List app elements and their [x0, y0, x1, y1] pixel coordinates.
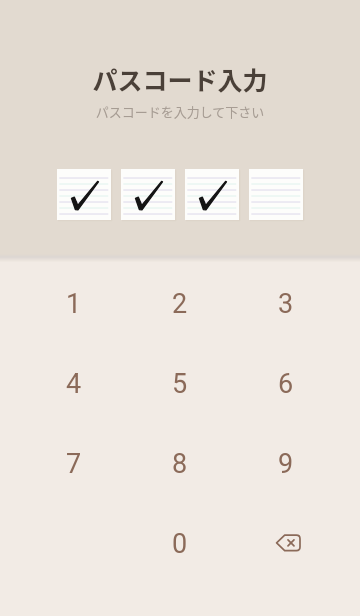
staticText: パスコードを入力して下さい — [0, 102, 360, 121]
button[interactable]: Passcode digit 2 entered — [121, 169, 175, 220]
button[interactable]: Passcode digit 4 empty — [249, 169, 303, 220]
button[interactable]: 5 — [127, 341, 233, 421]
button[interactable]: 7 — [21, 421, 127, 501]
button[interactable]: Passcode digit 3 entered — [185, 169, 239, 220]
button[interactable]: 3 — [233, 261, 339, 341]
staticText: 9 — [278, 448, 294, 480]
button[interactable]: Passcode digit 1 entered — [57, 169, 111, 220]
button[interactable]: 2 — [127, 261, 233, 341]
staticText: パスコード入力 — [0, 61, 360, 97]
button[interactable]: Delete — [233, 501, 339, 581]
staticText: 3 — [278, 288, 294, 320]
button[interactable]: 8 — [127, 421, 233, 501]
button[interactable]: 0 — [127, 501, 233, 581]
staticText: 0 — [172, 528, 188, 560]
staticText: 1 — [66, 288, 82, 320]
button[interactable]: 4 — [21, 341, 127, 421]
staticText: 8 — [172, 448, 188, 480]
button[interactable]: 9 — [233, 421, 339, 501]
button[interactable]: 6 — [233, 341, 339, 421]
staticText: 2 — [172, 288, 188, 320]
staticText: 7 — [66, 448, 82, 480]
staticText: 6 — [278, 368, 294, 400]
button[interactable]: 1 — [21, 261, 127, 341]
staticText: 4 — [66, 368, 82, 400]
staticText: 5 — [172, 368, 188, 400]
